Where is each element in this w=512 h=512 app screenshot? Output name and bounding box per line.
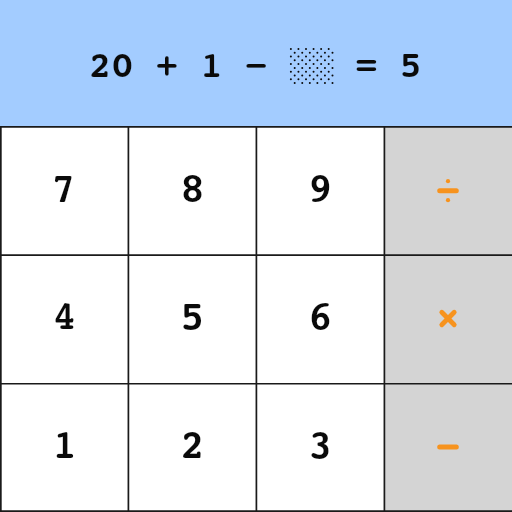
button[interactable]: 6 [256,254,384,383]
button[interactable]: 1 [0,383,128,512]
staticText: 4 [52,294,77,341]
button[interactable]: 3 [256,383,384,512]
staticText: 5 [180,294,205,341]
button[interactable]: Divide [384,126,512,254]
staticText: = 5 [333,45,423,89]
staticText: 2 [180,423,205,470]
staticText: 20 + 1 − [89,45,290,89]
button[interactable]: 9 [256,126,384,254]
button[interactable]: 7 [0,126,128,254]
button[interactable]: 8 [128,126,256,254]
button[interactable]: Subtract [384,383,512,512]
staticText: 1 [52,423,77,470]
button[interactable]: Multiply [384,254,512,383]
staticText: 7 [52,166,77,213]
staticText: 8 [180,166,205,213]
staticText: 3 [308,423,333,470]
button[interactable]: 4 [0,254,128,383]
staticText: 9 [308,166,333,213]
button[interactable]: 5 [128,254,256,383]
staticText: 6 [308,294,333,341]
button[interactable]: 2 [128,383,256,512]
